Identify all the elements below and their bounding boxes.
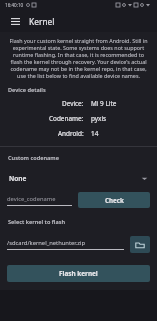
staticText: Device:: [62, 99, 84, 108]
staticText: Device details: [8, 86, 46, 94]
staticText: Custom codename: [8, 154, 59, 162]
staticText: None: [9, 174, 27, 183]
staticText: Flash your custom kernel straight from A…: [9, 37, 148, 79]
button[interactable]: device_codename: [7, 195, 72, 206]
button[interactable]: Check: [78, 192, 150, 208]
staticText: Kernel: [29, 16, 55, 27]
staticText: device_codename: [7, 195, 56, 203]
button[interactable]: Browse for kernel file: [130, 236, 150, 253]
staticText: Codename:: [49, 114, 84, 123]
staticText: /sdcard/kernel_nethunter.zip: [7, 239, 86, 247]
staticText: Check: [105, 196, 124, 204]
staticText: Flash kernel: [59, 269, 98, 278]
staticText: Select kernel to flash: [8, 218, 66, 226]
staticText: pyxis: [91, 114, 107, 123]
staticText: Android:: [58, 129, 84, 138]
staticText: Mi 9 Lite: [91, 99, 117, 108]
button[interactable]: Open navigation menu: [8, 14, 22, 28]
staticText: 16:40:10: [5, 2, 24, 8]
button[interactable]: Flash kernel: [7, 265, 150, 282]
button[interactable]: None: [0, 170, 157, 186]
staticText: 14: [91, 129, 99, 138]
button[interactable]: /sdcard/kernel_nethunter.zip: [7, 239, 124, 250]
